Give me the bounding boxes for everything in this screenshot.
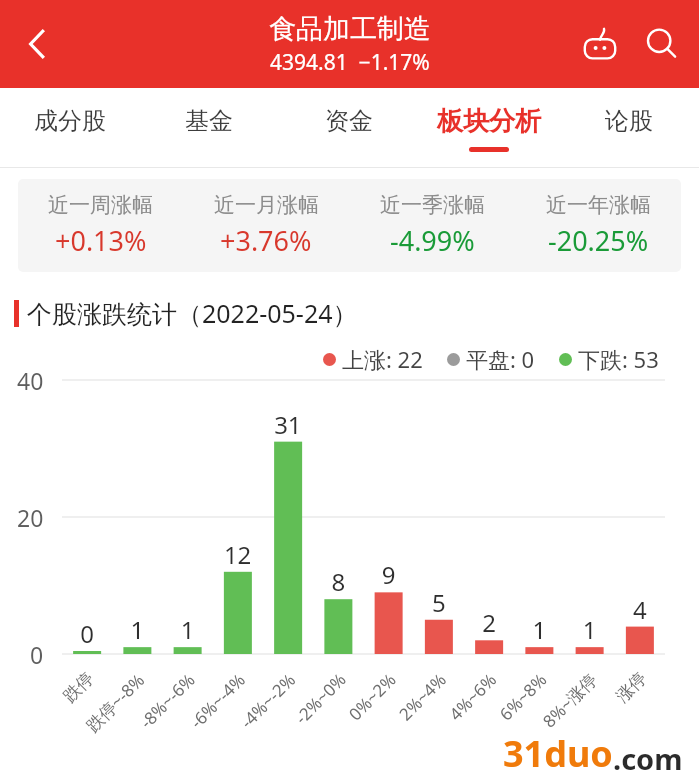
staticText: 近一周涨幅: [48, 192, 153, 218]
staticText: 4394.81 −1.17%: [270, 48, 430, 77]
button[interactable]: 近一周涨幅: [18, 192, 183, 259]
button[interactable]: 基金: [139, 88, 279, 168]
staticText: 近一季涨幅: [380, 192, 485, 218]
staticText: 近一月涨幅: [214, 192, 319, 218]
staticText: 资金: [325, 106, 373, 136]
button[interactable]: Back: [6, 13, 68, 75]
staticText: 个股涨跌统计（2022-05-24）: [27, 296, 358, 330]
staticText: 下跌: 53: [578, 344, 659, 374]
button[interactable]: 近一季涨幅: [349, 192, 515, 259]
staticText: 板块分析: [437, 105, 541, 138]
button[interactable]: 近一月涨幅: [183, 192, 349, 259]
staticText: 论股: [605, 106, 653, 136]
button[interactable]: 论股: [559, 88, 699, 168]
staticText: +3.76%: [220, 222, 312, 259]
button[interactable]: 平盘: 0: [447, 344, 535, 374]
staticText: 成分股: [34, 106, 106, 136]
staticText: 近一年涨幅: [546, 192, 651, 218]
button[interactable]: 资金: [279, 88, 419, 168]
button[interactable]: 下跌: 53: [559, 344, 659, 374]
staticText: 基金: [185, 106, 233, 136]
button[interactable]: Assistant: [569, 13, 631, 75]
staticText: +0.13%: [55, 222, 147, 259]
staticText: 31duo: [503, 729, 613, 778]
button[interactable]: 成分股: [0, 88, 139, 168]
staticText: 食品加工制造: [269, 12, 431, 46]
button[interactable]: 近一年涨幅: [515, 192, 681, 259]
staticText: .com: [613, 739, 683, 778]
staticText: 平盘: 0: [466, 344, 535, 374]
staticText: -4.99%: [390, 222, 475, 259]
button[interactable]: 上涨: 22: [323, 344, 423, 374]
button[interactable]: 板块分析: [419, 88, 559, 168]
staticText: -20.25%: [548, 222, 649, 259]
button[interactable]: Search: [631, 13, 693, 75]
staticText: 上涨: 22: [342, 344, 423, 374]
